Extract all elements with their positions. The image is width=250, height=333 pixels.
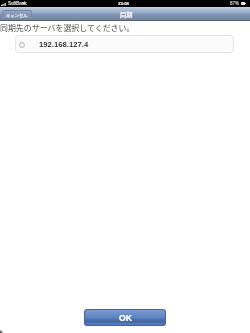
staticText: 同期 bbox=[120, 10, 133, 19]
staticText: キャンセル bbox=[6, 12, 28, 18]
staticText: SoftBank bbox=[8, 1, 27, 6]
staticText: 87% bbox=[230, 1, 240, 6]
staticText: 同期先のサーバを選択してください。 bbox=[0, 22, 135, 34]
other: Battery bbox=[241, 2, 246, 5]
button[interactable]: 192.168.127.4 bbox=[15, 35, 234, 53]
other: Wi-Fi bbox=[22, 2, 26, 5]
staticText: 23:04 bbox=[118, 1, 129, 6]
staticText: 192.168.127.4 bbox=[39, 40, 89, 49]
staticText: OK bbox=[119, 313, 132, 323]
button[interactable]: キャンセル bbox=[2, 10, 32, 19]
other: Cellular signal bbox=[1, 3, 6, 6]
button[interactable]: OK bbox=[84, 309, 166, 326]
